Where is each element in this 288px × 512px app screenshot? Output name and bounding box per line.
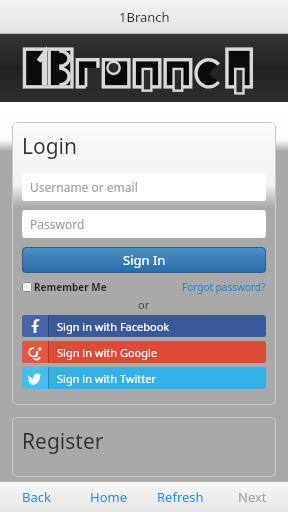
staticText: Forgot password? — [182, 280, 266, 294]
staticText: Password — [30, 216, 85, 232]
button[interactable]: Refresh — [144, 482, 216, 512]
button[interactable]: Back — [0, 482, 72, 512]
button[interactable]: Forgot password? — [182, 280, 266, 294]
button[interactable]: Sign in with Facebook — [22, 315, 266, 337]
button[interactable]: Sign In — [22, 247, 266, 273]
button[interactable]: Username or email — [22, 173, 266, 201]
staticText: Login — [22, 132, 78, 161]
staticText: Remember Me — [34, 280, 107, 294]
staticText: Username or email — [30, 179, 138, 195]
staticText: Sign In — [123, 251, 166, 269]
button[interactable]: Password — [22, 210, 266, 238]
staticText: Sign in with Twitter — [57, 371, 156, 386]
staticText: Home — [90, 488, 127, 506]
staticText: Next — [238, 488, 267, 506]
button[interactable]: Home — [72, 482, 144, 512]
staticText: Sign in with Google — [57, 345, 158, 360]
staticText: Refresh — [157, 488, 204, 506]
staticText: Back — [22, 488, 51, 506]
staticText: or — [138, 297, 150, 312]
button[interactable]: Sign in with Google — [22, 341, 266, 363]
staticText: Register — [22, 427, 104, 456]
button[interactable]: Remember Me — [22, 280, 107, 294]
staticText: Sign in with Facebook — [57, 319, 170, 334]
staticText: 1Branch — [119, 8, 170, 26]
button[interactable]: Sign in with Twitter — [22, 367, 266, 389]
button[interactable]: Next — [216, 482, 288, 512]
